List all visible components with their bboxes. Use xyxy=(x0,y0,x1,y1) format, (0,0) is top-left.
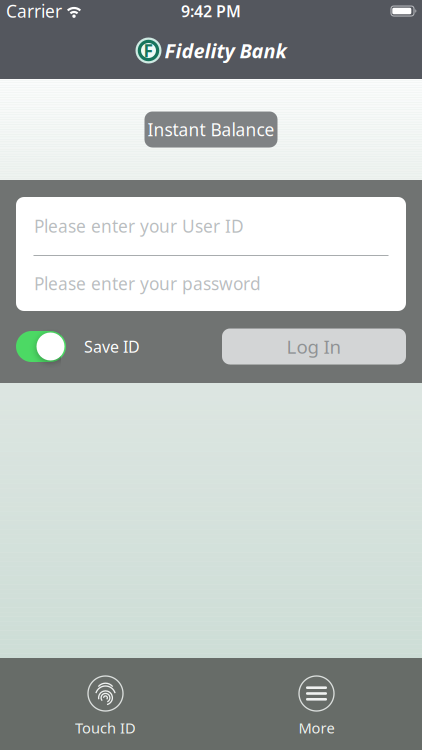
button[interactable]: Touch ID xyxy=(0,658,211,737)
button[interactable]: More xyxy=(211,658,422,737)
button[interactable]: Save ID xyxy=(16,331,66,362)
button[interactable]: Please enter your User ID xyxy=(16,197,406,255)
button[interactable]: Log In xyxy=(222,328,406,364)
button[interactable]: Instant Balance xyxy=(144,111,277,147)
staticText: Please enter your User ID xyxy=(34,214,244,237)
button[interactable]: Please enter your password xyxy=(16,256,406,311)
staticText: Please enter your password xyxy=(34,272,261,295)
staticText: F xyxy=(143,39,153,62)
staticText: Save ID xyxy=(84,336,140,357)
staticText: More xyxy=(298,718,334,737)
staticText: Touch ID xyxy=(75,718,136,737)
staticText: Fidelity Bank xyxy=(164,37,286,64)
staticText: 9:42 PM xyxy=(181,0,241,22)
staticText: Instant Balance xyxy=(147,118,274,141)
staticText: Log In xyxy=(286,334,341,359)
staticText: Carrier xyxy=(6,0,62,22)
